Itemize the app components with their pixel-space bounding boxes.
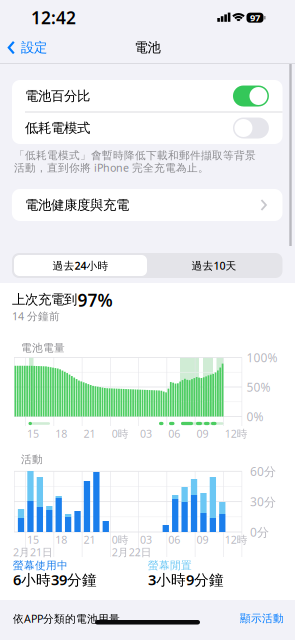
- staticText: 12時: [225, 532, 248, 547]
- staticText: 顯示活動: [240, 612, 284, 625]
- staticText: 14 分鐘前: [12, 309, 60, 323]
- staticText: 活動，直到你將 iPhone 完全充電為止。: [14, 160, 209, 175]
- staticText: 0分: [250, 524, 269, 540]
- staticText: 電池健康度與充電: [25, 197, 129, 213]
- staticText: 30分: [250, 494, 276, 510]
- staticText: 03: [140, 426, 152, 441]
- staticText: 螢幕使用中: [13, 559, 68, 572]
- staticText: 09: [197, 426, 209, 441]
- staticText: 12時: [225, 426, 248, 441]
- staticText: 12:42: [31, 6, 76, 29]
- button[interactable]: 低耗電模式: [12, 112, 282, 144]
- staticText: 3小時9分鐘: [148, 570, 224, 589]
- staticText: 06: [168, 426, 180, 441]
- staticText: 15: [27, 532, 39, 547]
- staticText: 21: [84, 532, 96, 547]
- staticText: 21: [84, 426, 96, 441]
- staticText: 0%: [246, 408, 263, 424]
- staticText: 螢幕閒置: [148, 559, 192, 572]
- staticText: 97: [250, 11, 260, 24]
- staticText: 過去24小時: [52, 258, 108, 273]
- staticText: 電池百分比: [25, 88, 90, 104]
- staticText: 100%: [246, 349, 277, 365]
- staticText: 97%: [77, 288, 112, 311]
- staticText: 50%: [246, 379, 270, 395]
- staticText: 上次充電到: [12, 291, 77, 308]
- button[interactable]: 依APP分類的電池用量: [12, 602, 282, 634]
- staticText: 低耗電模式: [25, 120, 90, 136]
- button[interactable]: 電池百分比: [12, 80, 282, 112]
- staticText: 09: [197, 532, 209, 547]
- staticText: 電池: [134, 39, 160, 56]
- staticText: 活動: [21, 453, 43, 466]
- staticText: 「低耗電模式」會暫時降低下載和郵件擷取等背景: [14, 149, 256, 162]
- staticText: 0時: [112, 426, 129, 441]
- button[interactable]: 顯示活動: [232, 602, 292, 634]
- staticText: 15: [27, 426, 39, 441]
- staticText: 18: [55, 532, 67, 547]
- staticText: 03: [140, 532, 152, 547]
- staticText: 設定: [21, 39, 47, 56]
- staticText: 依APP分類的電池用量: [13, 611, 120, 626]
- button[interactable]: 過去10天: [147, 255, 280, 276]
- button[interactable]: 返回設定: [0, 33, 60, 63]
- staticText: 電池電量: [21, 341, 65, 354]
- staticText: 2月21日: [13, 545, 53, 559]
- button[interactable]: 電池健康度與充電: [12, 189, 282, 221]
- staticText: 過去10天: [191, 258, 236, 273]
- staticText: 2月22日: [112, 545, 152, 559]
- staticText: 0時: [112, 532, 129, 547]
- staticText: 60分: [250, 463, 276, 479]
- button[interactable]: 過去24小時: [14, 255, 147, 276]
- staticText: 06: [168, 532, 180, 547]
- staticText: 18: [55, 426, 67, 441]
- staticText: 6小時39分鐘: [13, 570, 97, 589]
